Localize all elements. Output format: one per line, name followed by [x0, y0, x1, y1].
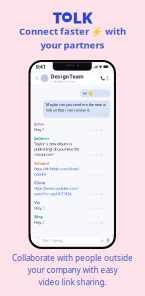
button[interactable]: Attach file: [99, 238, 104, 243]
staticText: Hey..!: [34, 220, 44, 225]
staticText: Collaborate with people outside: [12, 253, 133, 263]
button[interactable]: Back: [34, 76, 40, 80]
staticText: LK: [72, 7, 92, 28]
button[interactable]: More options: [105, 75, 110, 81]
staticText: 👋: [88, 91, 93, 96]
staticText: your partners: [40, 39, 104, 51]
staticText: 9:41: [36, 63, 46, 70]
staticText: Hi: [83, 91, 87, 96]
staticText: 10:21 PM: [89, 207, 103, 210]
staticText: T: [52, 7, 61, 28]
staticText: 10:21 PM: [89, 173, 103, 177]
staticText: Edward: [34, 160, 49, 166]
button[interactable]: Call: [100, 76, 105, 81]
staticText: video link sharing.: [38, 277, 106, 287]
staticText: Maybe can you send me the new ui link so…: [46, 102, 106, 112]
staticText: Connect faster ⚡ with: [19, 25, 126, 37]
staticText: Meg: [34, 214, 43, 219]
staticText: Jackson: [34, 135, 49, 141]
staticText: https://www.youtube.com/watch?v=-gizHk7-…: [34, 186, 78, 196]
staticText: Hey..!: [34, 205, 44, 210]
staticText: Chris: [34, 180, 45, 185]
staticText: 10:21 PM: [94, 91, 108, 95]
staticText: https://dribbble.com/shots/popular: [34, 166, 79, 177]
staticText: 10:21 PM: [89, 221, 103, 225]
staticText: Hey..!: [34, 127, 44, 132]
staticText: M A G N E T: [64, 28, 80, 31]
staticText: John: [34, 121, 44, 126]
staticText: Design Team: [51, 73, 84, 80]
staticText: 10:21 PM: [89, 128, 103, 132]
staticText: Vic: [34, 200, 40, 205]
staticText: Taylor's new album is publishing! do you…: [34, 141, 79, 157]
button[interactable]: Record voice message: [104, 238, 110, 243]
staticText: 3 members online: [51, 80, 77, 83]
staticText: 10:21 PM: [89, 153, 103, 157]
staticText: your company with easy: [27, 265, 117, 275]
staticText: Start Typing...: [42, 238, 65, 243]
staticText: 10:21 PM: [94, 112, 108, 116]
staticText: 10:21 PM: [89, 193, 103, 196]
